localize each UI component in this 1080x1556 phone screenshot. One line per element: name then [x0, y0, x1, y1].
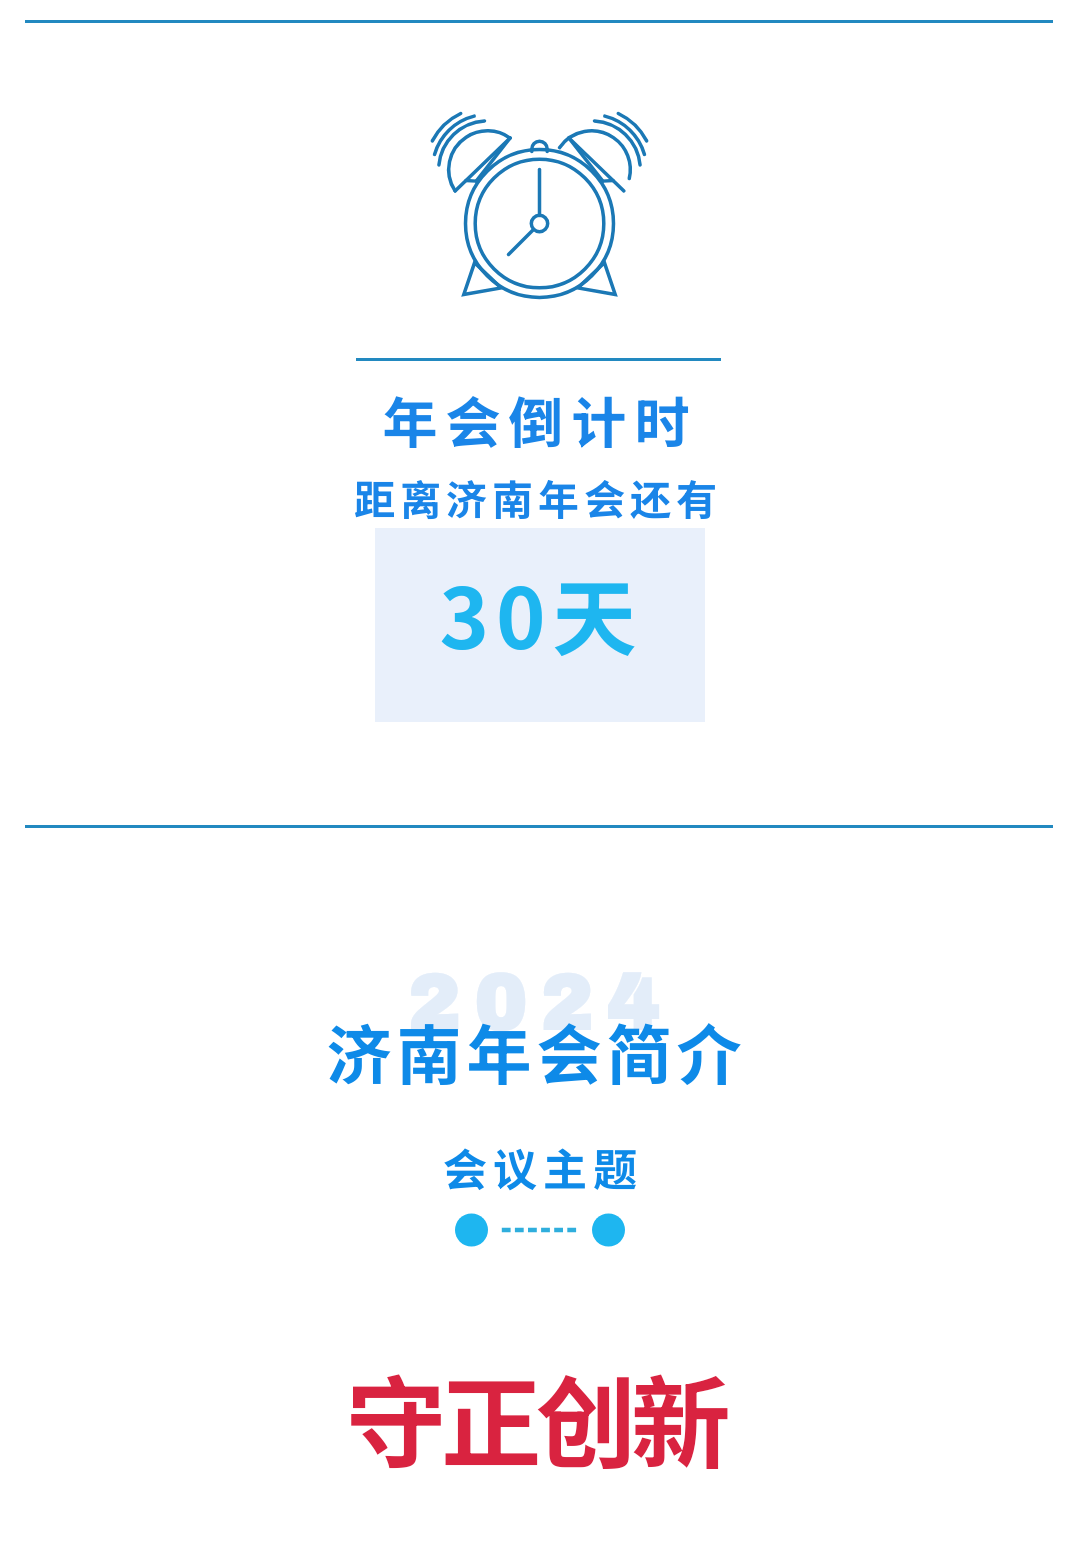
staticText: 年会倒计时	[382, 379, 698, 459]
button[interactable]	[0, 40, 1080, 820]
staticText: 距离济南年会还有	[354, 467, 722, 526]
staticText: 30天	[439, 552, 644, 674]
staticText: 2024	[407, 962, 673, 1046]
button[interactable]: Annual meeting countdown alarm clock	[420, 100, 660, 312]
staticText: 守正创新	[346, 1344, 726, 1489]
staticText: 济南年会简介	[326, 1004, 747, 1098]
staticText: 会议主题	[443, 1135, 643, 1199]
button[interactable]: Section divider	[455, 1208, 625, 1252]
button[interactable]	[375, 528, 705, 722]
